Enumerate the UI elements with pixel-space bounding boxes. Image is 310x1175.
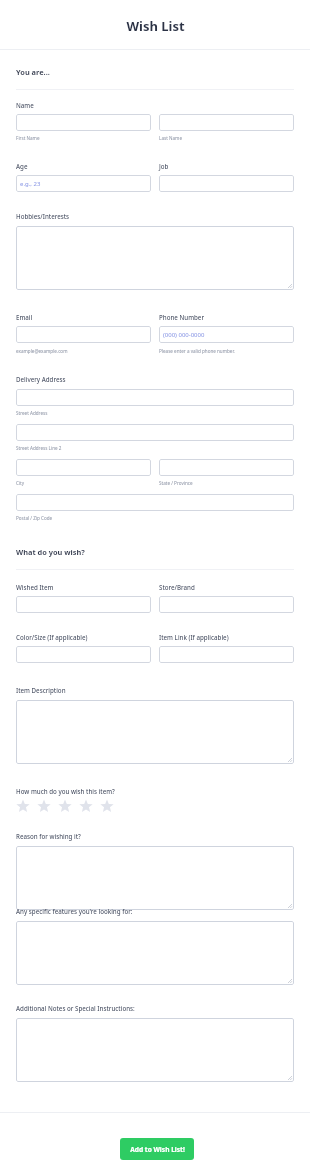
button[interactable]: Job [159,175,294,192]
staticText: What do you wish? [16,547,85,557]
staticText: Add to Wish List! [130,1145,185,1154]
staticText: Age [16,162,28,170]
button[interactable]: State / Province [159,459,294,476]
button[interactable]: Reason for wishing it [16,846,294,910]
staticText: City [16,480,25,486]
staticText: Postal / Zip Code [16,515,53,521]
staticText: Name [16,101,34,109]
staticText: (000) 000-0000 [163,331,205,339]
staticText: Additional Notes or Special Instructions… [16,1004,135,1012]
button[interactable]: First Name [16,114,151,131]
staticText: Color/Size (If applicable) [16,633,88,641]
button[interactable]: Last Name [159,114,294,131]
button[interactable]: Postal / Zip Code [16,494,294,511]
button[interactable]: City [16,459,151,476]
staticText: Store/Brand [159,583,195,591]
staticText: Reason for wishing it? [16,832,81,840]
staticText: Delivery Address [16,375,66,383]
staticText: You are... [16,67,50,77]
button[interactable]: Store/Brand [159,596,294,613]
button[interactable]: Hobbies/Interests [16,226,294,290]
staticText: Street Address [16,410,48,416]
staticText: Last Name [159,135,182,141]
staticText: Wished Item [16,583,54,591]
button[interactable]: Color/Size [16,646,151,663]
button[interactable]: Rate 1 star [16,798,37,813]
button[interactable]: Rate 5 star [100,798,121,813]
button[interactable]: Rate 2 star [37,798,58,813]
button[interactable]: Phone Number [159,326,294,343]
button[interactable]: Rate 3 star [58,798,79,813]
button[interactable]: Street Address [16,389,294,406]
button[interactable]: Add to Wish List! [120,1138,194,1160]
staticText: Email [16,313,33,321]
staticText: Please enter a valid phone number. [159,348,235,354]
button[interactable]: Email [16,326,151,343]
staticText: Job [159,162,169,170]
button[interactable]: Item Description [16,700,294,764]
staticText: Any specific features you're looking for… [16,907,133,915]
staticText: State / Province [159,480,193,486]
button[interactable]: Item Link [159,646,294,663]
staticText: Wish List [126,17,185,35]
button[interactable]: Additional notes [16,1018,294,1082]
staticText: Item Description [16,686,66,694]
staticText: example@example.com [16,348,68,354]
staticText: e.g., 23 [20,180,41,188]
staticText: Phone Number [159,313,205,321]
staticText: How much do you wish this item? [16,787,115,795]
staticText: First Name [16,135,40,141]
button[interactable]: Wished Item [16,596,151,613]
button[interactable]: Rate 4 star [79,798,100,813]
staticText: Hobbies/Interests [16,212,70,220]
staticText: Item Link (If applicable) [159,633,229,641]
button[interactable]: Street Address Line 2 [16,424,294,441]
button[interactable]: Specific features [16,921,294,985]
button[interactable]: Age [16,175,151,192]
staticText: Street Address Line 2 [16,445,62,451]
